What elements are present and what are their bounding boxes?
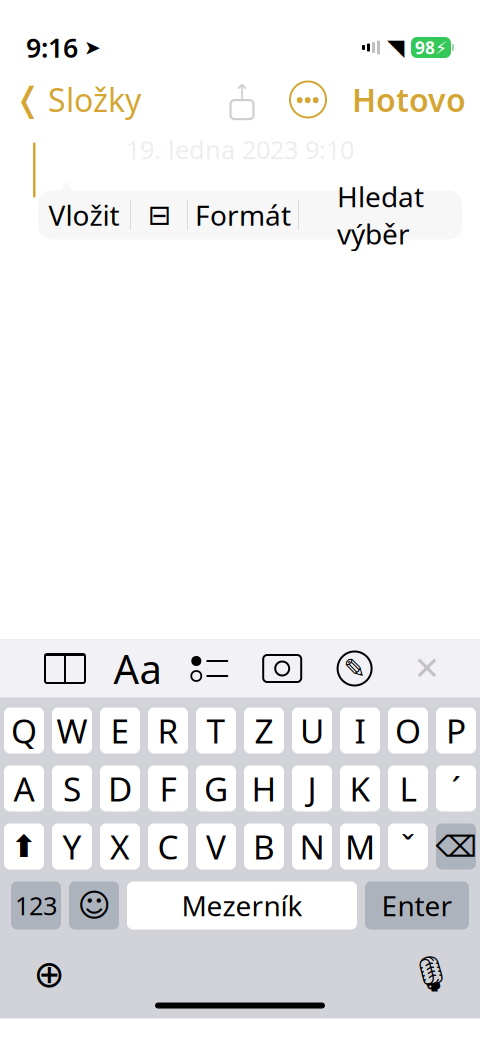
staticText: O <box>395 708 421 753</box>
staticText: 🎙 <box>409 954 453 994</box>
staticText: 9:16 <box>26 30 78 65</box>
staticText: 19. ledna 2023 9:10 <box>126 132 354 166</box>
button[interactable]: Sdílet <box>222 79 262 119</box>
button[interactable]: ˇ <box>388 823 428 869</box>
button[interactable]: F <box>148 765 188 811</box>
button[interactable]: Formát <box>188 190 298 239</box>
button[interactable]: Změnit jazyk <box>22 950 76 998</box>
button[interactable]: Hledat výběr <box>299 190 462 239</box>
staticText: K <box>349 766 370 811</box>
staticText: ☺ <box>77 887 110 924</box>
button[interactable]: K <box>340 765 380 811</box>
staticText: I <box>354 708 365 753</box>
button[interactable]: 123 <box>11 881 61 929</box>
button[interactable]: C <box>148 823 188 869</box>
staticText: ✎ <box>344 653 366 684</box>
button[interactable]: Zavřít klávesnici <box>398 639 456 697</box>
staticText: ↑ <box>233 80 251 104</box>
button[interactable]: Q <box>4 707 44 753</box>
staticText: ⬆ <box>11 829 37 864</box>
staticText: C <box>157 824 178 869</box>
staticText: E <box>110 708 129 753</box>
staticText: Složky <box>48 78 141 121</box>
button[interactable]: I <box>340 707 380 753</box>
staticText: Z <box>254 708 273 753</box>
staticText: S <box>63 766 81 811</box>
button[interactable]: S <box>52 765 92 811</box>
button[interactable]: E <box>100 707 140 753</box>
button[interactable]: Fotoaparát <box>253 639 311 697</box>
staticText: ˇ <box>401 824 415 869</box>
button[interactable]: Diktovat <box>404 950 458 998</box>
button[interactable]: Kreslení <box>326 639 384 697</box>
staticText: Y <box>62 824 81 869</box>
staticText: T <box>206 708 225 753</box>
staticText: P <box>446 708 466 753</box>
button[interactable]: Zaškrtávací seznam <box>181 639 239 697</box>
staticText: ⊕ <box>33 953 64 995</box>
button[interactable]: W <box>52 707 92 753</box>
staticText: Hledat výběr <box>337 178 424 252</box>
button[interactable]: T <box>196 707 236 753</box>
button[interactable]: N <box>292 823 332 869</box>
button[interactable]: Hotovo <box>352 72 466 127</box>
button[interactable]: Formátování <box>108 639 166 697</box>
staticText: ➤ <box>84 36 101 59</box>
staticText: N <box>299 824 324 869</box>
button[interactable]: Smazat <box>436 823 476 869</box>
button[interactable]: A <box>4 765 44 811</box>
button[interactable]: O <box>388 707 428 753</box>
button[interactable]: B <box>244 823 284 869</box>
button[interactable]: Enter <box>365 881 469 929</box>
staticText: Enter <box>381 887 452 924</box>
staticText: H <box>251 766 276 811</box>
staticText: ◥ <box>387 35 404 60</box>
staticText: ⌫ <box>435 830 476 863</box>
button[interactable]: J <box>292 765 332 811</box>
staticText: V <box>206 824 226 869</box>
button[interactable]: ´ <box>436 765 476 811</box>
button[interactable]: Mezerník <box>127 881 357 929</box>
button[interactable]: Z <box>244 707 284 753</box>
button[interactable]: X <box>100 823 140 869</box>
staticText: L <box>399 766 416 811</box>
button[interactable]: G <box>196 765 236 811</box>
staticText: ✕ <box>413 650 440 687</box>
button[interactable]: Více <box>290 81 326 117</box>
staticText: W <box>56 708 87 753</box>
staticText: J <box>307 766 316 811</box>
staticText: M <box>345 824 375 869</box>
button[interactable]: P <box>436 707 476 753</box>
button[interactable]: Skenovat text <box>131 190 187 239</box>
button[interactable]: H <box>244 765 284 811</box>
staticText: Vložit <box>48 196 119 234</box>
button[interactable]: M <box>340 823 380 869</box>
staticText: G <box>204 766 228 811</box>
staticText: A <box>13 766 34 811</box>
staticText: Hotovo <box>352 78 466 121</box>
button[interactable]: Shift <box>4 823 44 869</box>
staticText: X <box>110 824 130 869</box>
button[interactable]: ❬ <box>14 72 141 127</box>
button[interactable]: R <box>148 707 188 753</box>
button[interactable]: D <box>100 765 140 811</box>
staticText: 123 <box>15 889 57 922</box>
staticText: ⊟ <box>147 199 170 231</box>
staticText: Mezerník <box>181 887 302 924</box>
button[interactable]: V <box>196 823 236 869</box>
button[interactable]: U <box>292 707 332 753</box>
staticText: B <box>253 824 275 869</box>
button[interactable]: Y <box>52 823 92 869</box>
staticText: R <box>157 708 178 753</box>
staticText: D <box>108 766 132 811</box>
button[interactable]: Vložit <box>38 190 130 239</box>
button[interactable]: Emoji <box>69 881 119 929</box>
button[interactable]: L <box>388 765 428 811</box>
staticText: U <box>300 708 324 753</box>
button[interactable]: Tabulka <box>36 639 94 697</box>
staticText: ••• <box>296 86 320 113</box>
staticText: ❬ <box>14 81 42 118</box>
staticText: Formát <box>195 196 291 234</box>
staticText: ▲ <box>60 176 73 196</box>
staticText: 98⚡︎ <box>415 36 447 59</box>
